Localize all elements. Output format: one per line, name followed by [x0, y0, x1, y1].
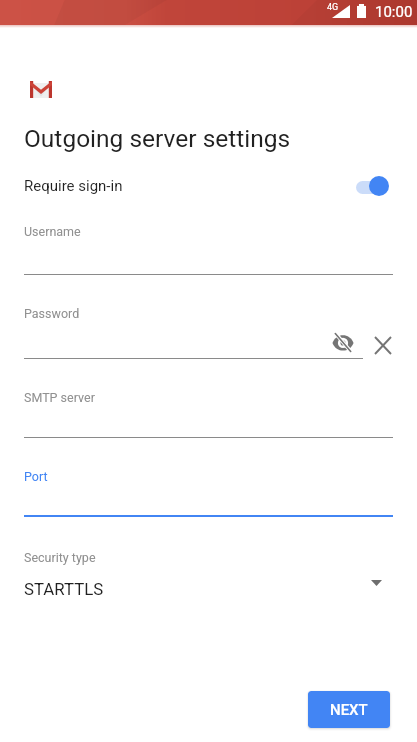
staticText: Security type: [24, 550, 96, 565]
button[interactable]: NEXT: [308, 691, 390, 728]
button[interactable]: Password: [24, 306, 363, 364]
button[interactable]: Security type: [24, 546, 393, 601]
staticText: 4G: [327, 2, 339, 13]
staticText: SMTP server: [24, 390, 95, 405]
button[interactable]: Require sign-in toggle: [347, 173, 393, 199]
staticText: Outgoing server settings: [24, 124, 291, 153]
button[interactable]: Require sign-in: [0, 171, 417, 201]
staticText: 10:00: [375, 3, 413, 21]
button[interactable]: Show password: [329, 328, 357, 356]
button[interactable]: Username: [24, 224, 393, 282]
staticText: Port: [24, 469, 48, 484]
staticText: Require sign-in: [24, 177, 123, 195]
staticText: Password: [24, 306, 80, 321]
staticText: STARTTLS: [24, 579, 104, 599]
button[interactable]: Port: [24, 469, 393, 525]
button[interactable]: SMTP server: [24, 390, 393, 445]
staticText: Username: [24, 224, 81, 239]
staticText: NEXT: [330, 701, 368, 719]
button[interactable]: Clear password: [369, 331, 397, 359]
